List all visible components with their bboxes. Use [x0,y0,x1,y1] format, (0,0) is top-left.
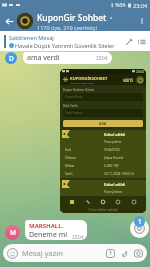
staticText: KUPONGİRSOHBET [70,76,108,81]
button[interactable]: Edit [123,36,134,47]
staticText: Tarih Seçiniz [65,111,83,115]
staticText: ↕ %54 [110,2,126,9]
staticText: Sabitlenen Mesaj [9,34,54,41]
button[interactable]: More options [135,11,149,31]
staticText: ama verdi [27,53,60,63]
other: Camera [134,249,143,258]
button[interactable]: Pinned messages list [136,36,147,47]
other: Stickers [106,249,115,258]
staticText: D [9,54,14,63]
staticText: Kabul edildi [104,182,126,187]
staticText: Tarih [65,172,73,176]
staticText: 23:04 [136,70,144,74]
other: Emoji [7,248,18,259]
staticText: Ödeme [65,156,77,160]
staticText: 23:04 [72,234,84,240]
staticText: Deneme mi [29,230,67,240]
button[interactable]: Mentions [130,219,149,238]
staticText: Kod [65,148,71,152]
staticText: 0.680 TRY [104,164,119,168]
staticText: KuponGir Sohbet [37,12,107,24]
staticText: 5594/0742 [104,148,120,152]
staticText: MARSHALL. [29,222,64,230]
staticText: Mesaj yazın [22,248,63,258]
staticText: Kupon Kodunu Giriniz [63,88,94,92]
button[interactable]: MARSHALL. [25,220,87,240]
staticText: 1 [138,217,142,226]
staticText: casino & bahis sitesi [70,81,94,84]
staticText: 30.11.2024 19:50:14 [104,172,134,176]
staticText: Havale Düşük Yatırımlı Güvenlik Siteler [15,42,115,49]
button[interactable]: Back [2,14,16,28]
staticText: © tüm hakları saklıdır. [88,208,119,212]
staticText: Kupon Kodu [65,95,83,99]
staticText: 0.00 TL [123,79,134,83]
staticText: Para çekme [104,140,122,144]
staticText: Kabul edildi [104,132,126,137]
button[interactable]: Emoji [3,244,147,262]
staticText: Para Çekme [104,190,122,194]
staticText: 23:04 [96,55,108,61]
staticText: 1170 üye, 210 çevrimiçi [37,24,97,31]
button[interactable]: ARA [63,120,143,127]
other: Attach [120,249,129,258]
staticText: 23:04 [133,2,148,9]
staticText: BAKIYE [125,76,134,79]
staticText: ARA [99,121,107,126]
button[interactable]: Sabitlenen Mesaj [0,31,150,51]
staticText: Bilet Tarihi [63,104,78,108]
staticText: M [10,228,16,237]
button[interactable]: ama verdi [23,52,112,64]
staticText: Jokpa Havale [104,156,124,160]
button[interactable]: 23:04 [60,69,146,213]
staticText: Miktar [65,164,75,168]
